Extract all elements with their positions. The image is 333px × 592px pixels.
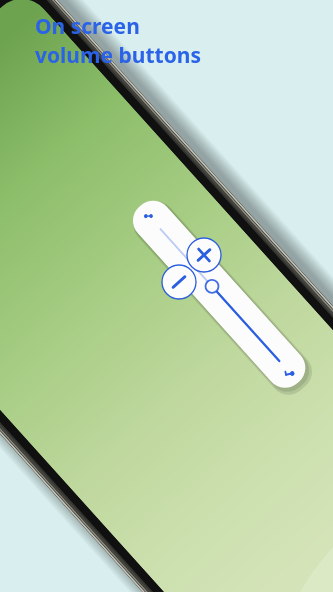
button[interactable]: Volume down [161, 264, 197, 300]
staticText: volume buttons [35, 41, 201, 70]
staticText: On screen [35, 12, 140, 41]
button[interactable]: On screen [35, 12, 201, 70]
button[interactable]: Volume up [186, 237, 222, 273]
